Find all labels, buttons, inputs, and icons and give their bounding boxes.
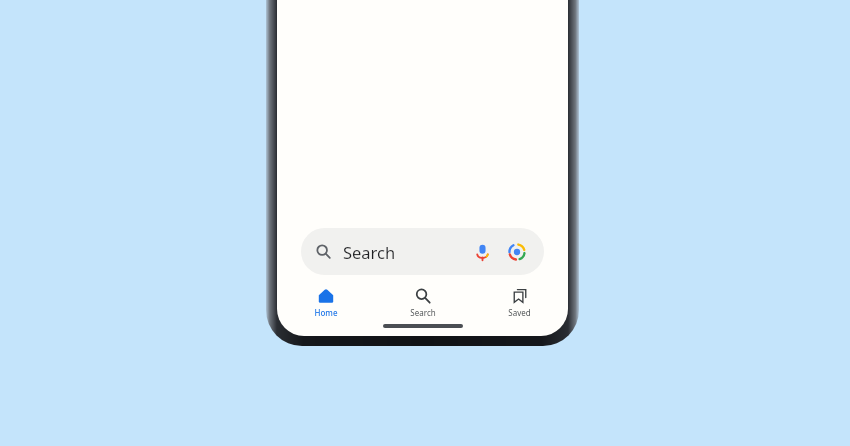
button[interactable]: Saved xyxy=(471,288,568,318)
staticText: Home xyxy=(314,307,338,318)
staticText: Search xyxy=(343,241,396,263)
button[interactable]: Search xyxy=(301,228,544,275)
button[interactable]: Search with Google Lens xyxy=(504,239,530,265)
button[interactable]: Search xyxy=(374,288,471,318)
button[interactable]: Search by voice xyxy=(469,239,495,265)
staticText: Saved xyxy=(508,307,531,318)
staticText: Search xyxy=(410,307,436,318)
button[interactable]: Home xyxy=(277,288,374,318)
